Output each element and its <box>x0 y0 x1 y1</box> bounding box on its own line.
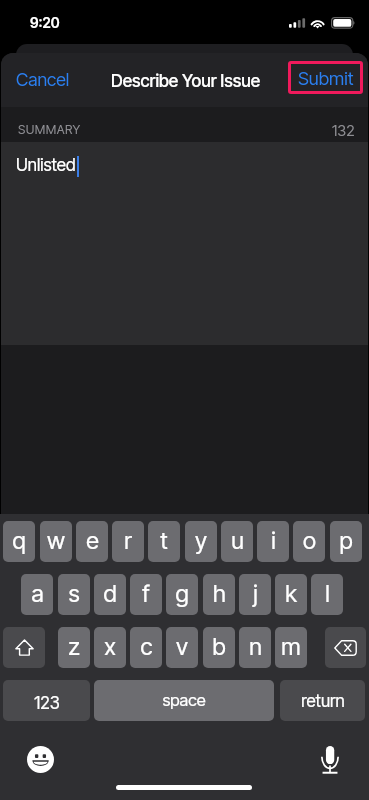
button[interactable]: Dictation <box>312 742 347 777</box>
button[interactable]: y <box>185 521 217 562</box>
staticText: a <box>31 579 44 607</box>
staticText: o <box>303 526 316 554</box>
staticText: v <box>176 632 188 660</box>
button[interactable]: j <box>239 574 271 615</box>
button[interactable]: i <box>257 521 289 562</box>
staticText: m <box>281 632 301 660</box>
button[interactable]: b <box>203 627 235 668</box>
button[interactable]: 123 <box>3 680 90 721</box>
button[interactable]: z <box>58 627 90 668</box>
button[interactable]: n <box>239 627 271 668</box>
button[interactable]: c <box>130 627 162 668</box>
button[interactable]: Emoji keyboard <box>23 742 58 777</box>
staticText: t <box>160 526 168 554</box>
staticText: g <box>175 579 189 607</box>
staticText: n <box>249 632 262 660</box>
staticText: y <box>195 526 207 554</box>
button[interactable]: r <box>112 521 144 562</box>
staticText: Submit <box>298 67 354 89</box>
staticText: b <box>212 632 226 660</box>
button[interactable]: a <box>21 574 53 615</box>
staticText: SUMMARY <box>18 122 81 137</box>
staticText: q <box>12 526 26 554</box>
staticText: e <box>86 526 99 554</box>
button[interactable]: o <box>293 521 325 562</box>
staticText: 123 <box>34 693 60 714</box>
staticText: l <box>325 579 330 607</box>
button[interactable]: h <box>203 574 235 615</box>
button[interactable]: p <box>330 521 362 562</box>
staticText: Cancel <box>16 69 70 91</box>
staticText: Describe Your Issue <box>111 70 261 91</box>
button[interactable]: return <box>280 680 365 721</box>
staticText: 132 <box>332 121 355 139</box>
button[interactable]: x <box>94 627 126 668</box>
staticText: j <box>253 579 258 607</box>
button[interactable]: t <box>148 521 180 562</box>
staticText: space <box>162 690 206 710</box>
staticText: p <box>339 526 353 554</box>
button[interactable]: space <box>94 680 274 721</box>
button[interactable]: s <box>58 574 90 615</box>
staticText: c <box>140 632 153 660</box>
button[interactable]: e <box>76 521 108 562</box>
button[interactable]: l <box>311 574 343 615</box>
button[interactable]: u <box>221 521 253 562</box>
button[interactable]: q <box>3 521 35 562</box>
staticText: x <box>104 632 116 660</box>
staticText: w <box>47 526 65 554</box>
staticText: 9:20 <box>30 14 60 31</box>
button[interactable]: Cancel <box>10 65 76 95</box>
button[interactable]: Shift <box>3 627 45 668</box>
staticText: k <box>285 579 297 607</box>
staticText: Unlisted <box>16 155 76 176</box>
staticText: h <box>213 579 226 607</box>
button[interactable]: g <box>166 574 198 615</box>
staticText: s <box>68 579 80 607</box>
staticText: r <box>124 526 132 554</box>
staticText: f <box>142 579 150 607</box>
button[interactable]: k <box>275 574 307 615</box>
staticText: u <box>231 526 244 554</box>
button[interactable]: Submit <box>288 61 363 94</box>
button[interactable]: f <box>130 574 162 615</box>
button[interactable]: v <box>166 627 198 668</box>
staticText: return <box>301 691 345 712</box>
button[interactable]: d <box>94 574 126 615</box>
staticText: i <box>271 526 276 554</box>
staticText: d <box>103 579 117 607</box>
button[interactable]: w <box>40 521 72 562</box>
staticText: z <box>68 632 80 660</box>
button[interactable]: m <box>275 627 307 668</box>
button[interactable]: Backspace <box>325 627 366 668</box>
